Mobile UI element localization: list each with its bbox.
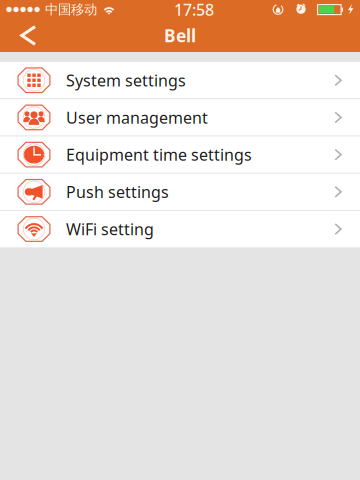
staticText: WiFi setting xyxy=(66,218,154,240)
button[interactable]: Back xyxy=(9,19,48,52)
button[interactable]: System settings xyxy=(0,62,360,98)
staticText: 17:58 xyxy=(174,0,214,20)
staticText: Equipment time settings xyxy=(66,144,252,165)
button[interactable]: WiFi setting xyxy=(0,211,360,247)
staticText: User management xyxy=(66,107,208,128)
button[interactable]: Equipment time settings xyxy=(0,136,360,173)
button[interactable]: Push settings xyxy=(0,174,360,210)
staticText: Push settings xyxy=(66,181,169,202)
button[interactable]: User management xyxy=(0,99,360,136)
staticText: 中国移动 xyxy=(45,1,97,18)
staticText: Bell xyxy=(164,24,196,47)
staticText: System settings xyxy=(66,70,186,91)
